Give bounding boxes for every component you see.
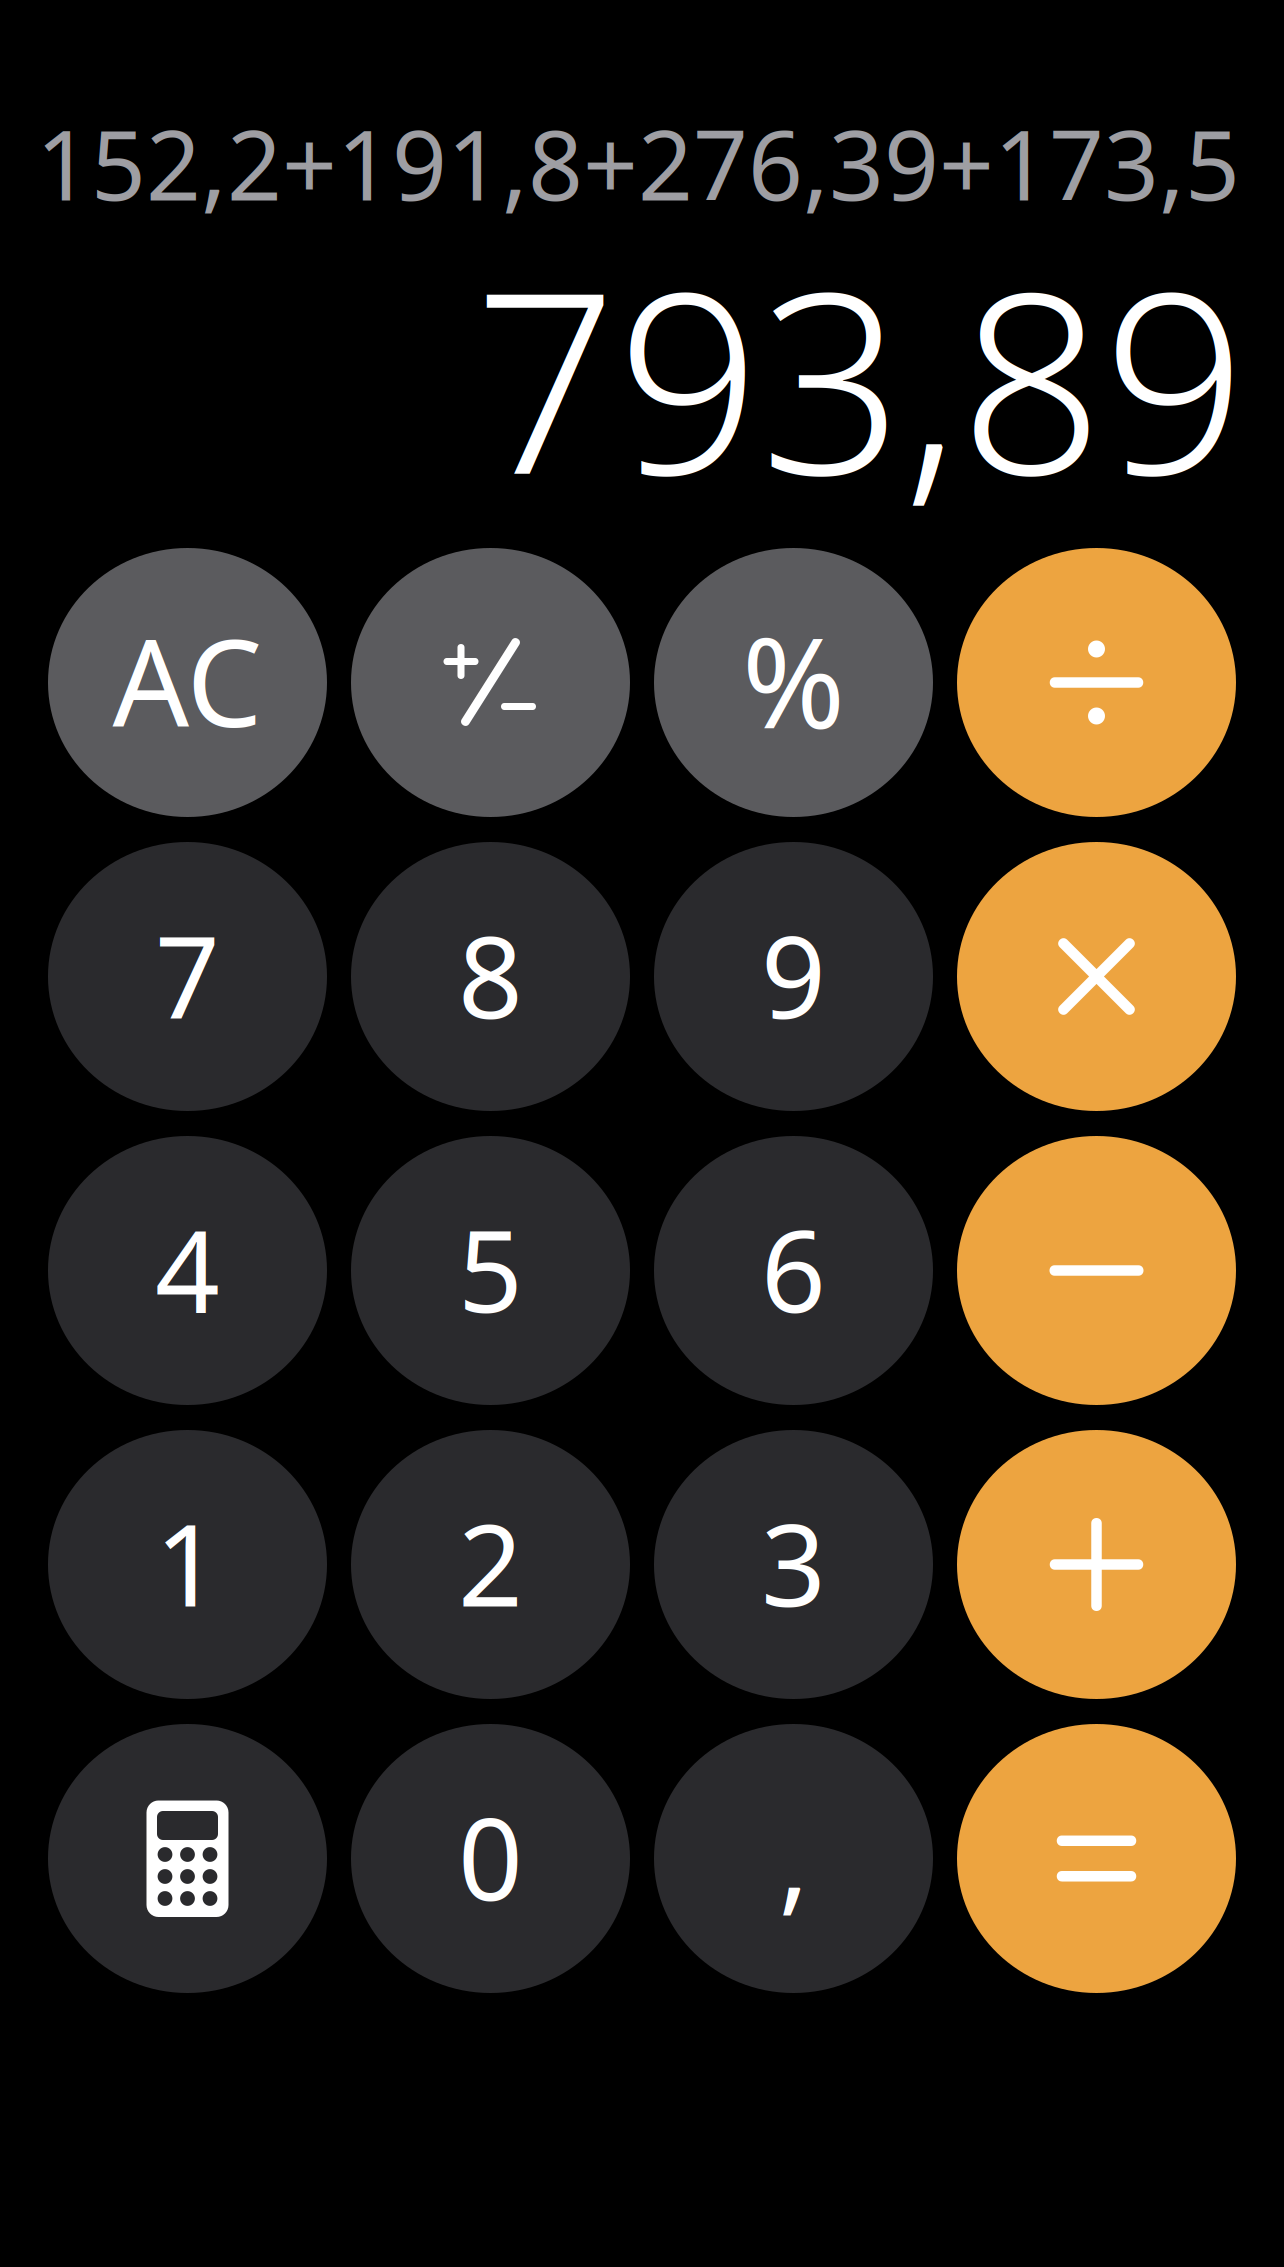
- staticText: 4: [155, 1193, 220, 1344]
- button[interactable]: 5: [351, 1136, 630, 1405]
- button[interactable]: 1: [48, 1430, 327, 1699]
- staticText: 7: [155, 899, 220, 1050]
- staticText: 3: [761, 1487, 826, 1638]
- button[interactable]: 2: [351, 1430, 630, 1699]
- staticText: 2: [458, 1487, 523, 1638]
- button[interactable]: 3: [654, 1430, 933, 1699]
- staticText: ,: [778, 1781, 808, 1932]
- staticText: 152,2+191,8+276,39+173,5: [36, 100, 1240, 227]
- button[interactable]: 7: [48, 842, 327, 1111]
- button[interactable]: 9: [654, 842, 933, 1111]
- staticText: 5: [458, 1193, 523, 1344]
- staticText: %: [742, 598, 845, 763]
- staticText: 793,89: [474, 210, 1246, 543]
- staticText: AC: [112, 601, 262, 760]
- button[interactable]: Divide: [957, 548, 1236, 817]
- button[interactable]: Subtract: [957, 1136, 1236, 1405]
- button[interactable]: Equals: [957, 1724, 1236, 1993]
- staticText: 6: [761, 1193, 826, 1344]
- staticText: 9: [761, 899, 826, 1050]
- staticText: 0: [458, 1781, 523, 1932]
- button[interactable]: Multiply: [957, 842, 1236, 1111]
- button[interactable]: Calculator: [48, 1724, 327, 1993]
- button[interactable]: Percent: [654, 548, 933, 817]
- button[interactable]: 4: [48, 1136, 327, 1405]
- button[interactable]: All clear: [48, 548, 327, 817]
- button[interactable]: 0: [351, 1724, 630, 1993]
- button[interactable]: Add: [957, 1430, 1236, 1699]
- button[interactable]: Toggle sign: [351, 548, 630, 817]
- button[interactable]: 6: [654, 1136, 933, 1405]
- staticText: 1: [155, 1487, 220, 1638]
- button[interactable]: Decimal separator: [654, 1724, 933, 1993]
- button[interactable]: 8: [351, 842, 630, 1111]
- staticText: 8: [458, 899, 523, 1050]
